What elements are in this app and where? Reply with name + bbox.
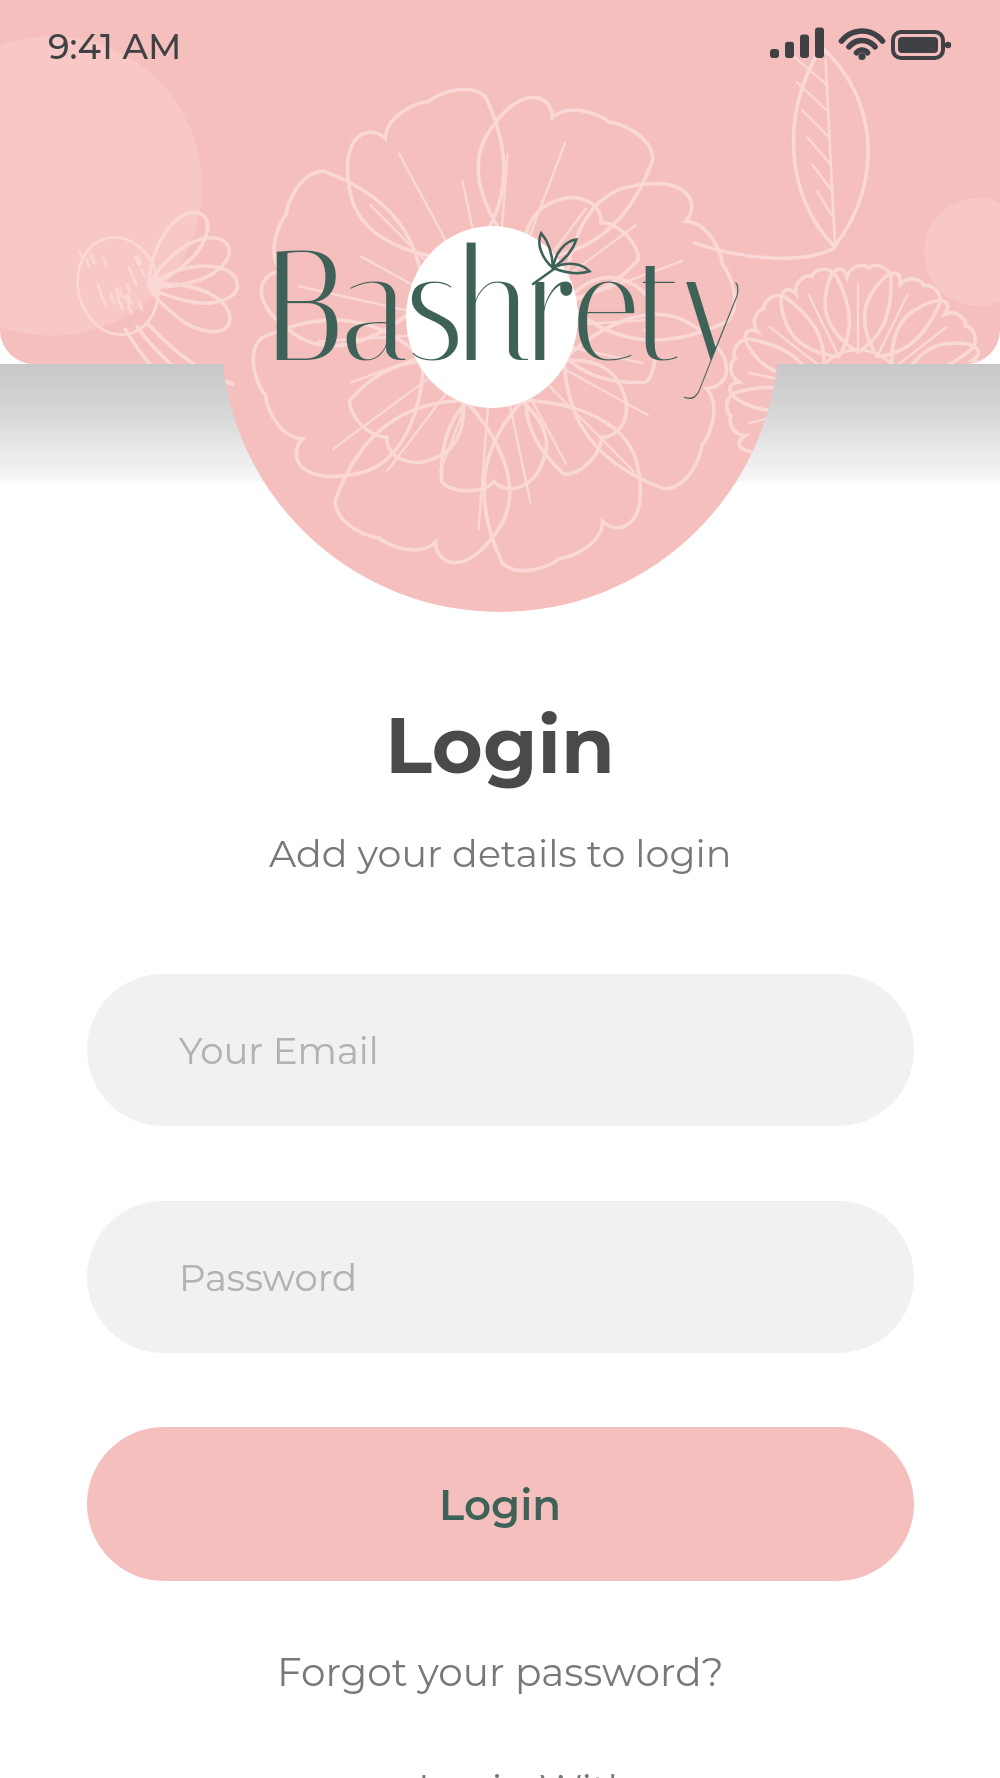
staticText: Login With	[418, 1765, 634, 1778]
staticText: Add your details to login	[269, 830, 732, 876]
staticText: Login	[439, 1479, 562, 1530]
button[interactable]: Forgot your password?	[269, 1642, 732, 1702]
staticText: Forgot your password?	[277, 1648, 724, 1696]
staticText: Your Email	[179, 1028, 379, 1073]
button[interactable]: Login	[87, 1427, 914, 1581]
button[interactable]: Your Email	[87, 974, 914, 1126]
staticText: 9:41 AM	[48, 25, 182, 68]
staticText: Bashrety	[267, 213, 744, 399]
staticText: Login	[385, 697, 615, 792]
staticText: Password	[179, 1255, 358, 1300]
button[interactable]: Password	[87, 1201, 914, 1353]
